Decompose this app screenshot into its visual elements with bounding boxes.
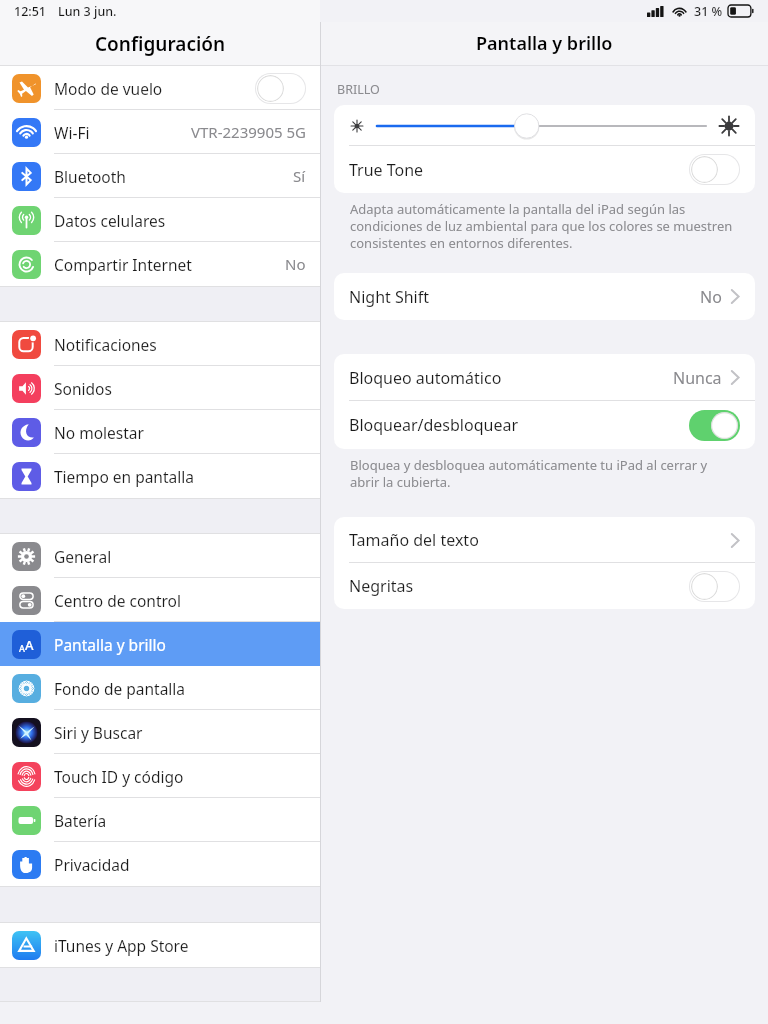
staticText: Privacidad (54, 854, 306, 875)
staticText: No (700, 286, 722, 308)
staticText: VTR-2239905 5G (191, 122, 306, 142)
staticText: Notificaciones (54, 334, 306, 355)
button[interactable] (255, 73, 306, 104)
button[interactable]: Fondo de pantalla (0, 666, 320, 710)
staticText: Configuración (95, 31, 226, 57)
button[interactable]: Centro de control (0, 578, 320, 622)
staticText: Nunca (673, 367, 722, 389)
staticText: Sí (293, 166, 306, 186)
staticText: BRILLO (337, 81, 380, 98)
staticText: Bluetooth (54, 166, 293, 187)
button[interactable]: Notificaciones (0, 322, 320, 366)
staticText: Batería (54, 810, 306, 831)
button[interactable] (689, 154, 740, 185)
staticText: Bloquea y desbloquea automáticamente tu … (350, 456, 735, 491)
staticText: Pantalla y brillo (476, 31, 613, 56)
staticText: Touch ID y código (54, 766, 306, 787)
button[interactable]: Wi-Fi (0, 110, 320, 154)
staticText: Wi-Fi (54, 122, 191, 143)
staticText: No molestar (54, 422, 306, 443)
staticText: Lun 3 jun. (58, 3, 117, 20)
staticText: A (25, 636, 34, 654)
staticText: Sonidos (54, 378, 306, 399)
staticText: Bloquear/desbloquear (349, 414, 689, 436)
staticText: Compartir Internet (54, 254, 285, 275)
staticText: Night Shift (349, 286, 700, 308)
button[interactable]: General (0, 534, 320, 578)
staticText: Negritas (349, 575, 689, 597)
button[interactable]: iTunes y App Store (0, 923, 320, 967)
button[interactable]: Tiempo en pantalla (0, 454, 320, 498)
button[interactable]: No molestar (0, 410, 320, 454)
button[interactable]: Touch ID y código (0, 754, 320, 798)
button[interactable]: Negritas (334, 563, 755, 609)
staticText: Fondo de pantalla (54, 678, 306, 699)
staticText: Centro de control (54, 590, 306, 611)
staticText: Datos celulares (54, 210, 306, 231)
staticText: iTunes y App Store (54, 935, 306, 956)
staticText: Bloqueo automático (349, 367, 673, 389)
button[interactable]: Datos celulares (0, 198, 320, 242)
staticText: Pantalla y brillo (54, 634, 306, 655)
staticText: A (19, 642, 25, 654)
staticText: True Tone (349, 159, 689, 181)
staticText: Adapta automáticamente la pantalla del i… (350, 200, 735, 252)
button[interactable]: True Tone (334, 146, 755, 193)
button[interactable]: Tamaño del texto (334, 517, 755, 563)
staticText: No (285, 254, 306, 274)
button[interactable]: A (0, 622, 320, 666)
staticText: Tamaño del texto (349, 529, 730, 551)
staticText: General (54, 546, 306, 567)
button[interactable]: Modo de vuelo (0, 66, 320, 110)
button[interactable] (689, 410, 740, 441)
staticText: Siri y Buscar (54, 722, 306, 743)
staticText: Tiempo en pantalla (54, 466, 306, 487)
button[interactable]: Bloqueo automático (334, 354, 755, 401)
button[interactable]: Bloquear/desbloquear (334, 401, 755, 449)
button[interactable]: Night Shift (334, 273, 755, 320)
staticText: 12:51 (14, 3, 47, 20)
staticText: Modo de vuelo (54, 78, 255, 99)
staticText: 31 % (694, 3, 723, 20)
button[interactable]: Bluetooth (0, 154, 320, 198)
button[interactable]: Batería (0, 798, 320, 842)
button[interactable]: Compartir Internet (0, 242, 320, 286)
button[interactable]: Privacidad (0, 842, 320, 886)
button[interactable]: Siri y Buscar (0, 710, 320, 754)
button[interactable] (689, 571, 740, 602)
button[interactable]: Sonidos (0, 366, 320, 410)
